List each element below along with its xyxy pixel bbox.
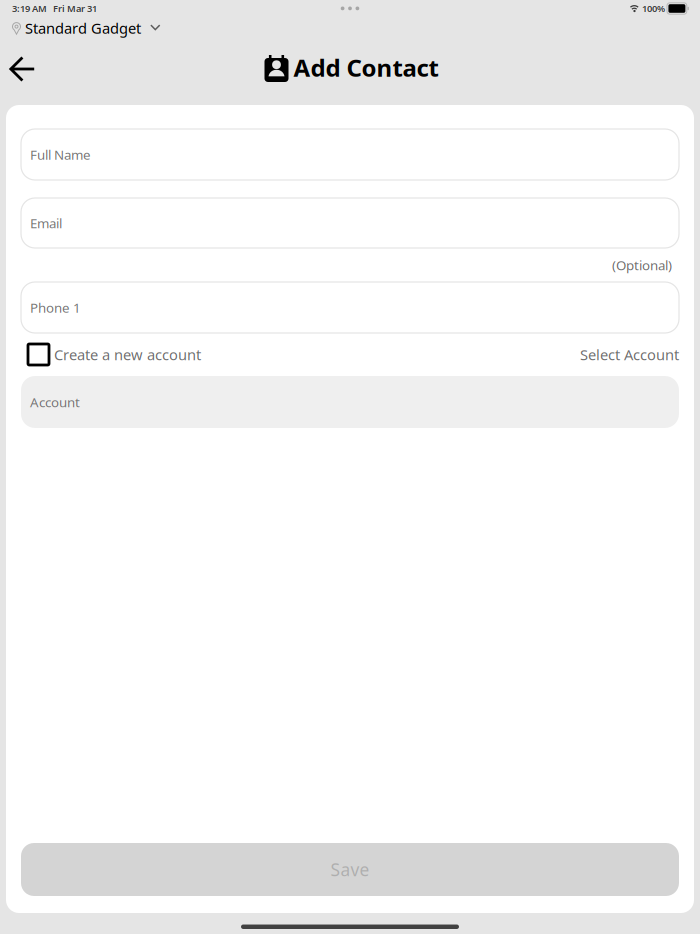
staticText: Select Account bbox=[580, 345, 679, 364]
button[interactable]: Phone 1 bbox=[21, 282, 679, 333]
staticText: 100% bbox=[640, 2, 667, 15]
staticText: Email bbox=[30, 214, 62, 232]
staticText: 3:19 AM Fri Mar 31 bbox=[12, 2, 97, 15]
button[interactable]: Account bbox=[21, 376, 679, 428]
staticText: Create a new account bbox=[54, 345, 201, 364]
button[interactable]: Select Account bbox=[580, 333, 679, 376]
staticText: Add Contact bbox=[293, 52, 438, 83]
staticText: Save bbox=[330, 858, 369, 881]
staticText: Account bbox=[30, 393, 80, 411]
button[interactable]: Create a new account bbox=[21, 333, 201, 376]
button[interactable]: Standard Gadget bbox=[0, 16, 167, 44]
button[interactable]: Save bbox=[21, 843, 679, 896]
button[interactable]: Email bbox=[21, 198, 679, 248]
button[interactable]: Full Name bbox=[21, 129, 679, 180]
staticText: Full Name bbox=[30, 146, 91, 163]
staticText: Standard Gadget bbox=[25, 18, 141, 38]
staticText: Phone 1 bbox=[30, 299, 81, 316]
staticText: (Optional) bbox=[612, 256, 672, 274]
button[interactable]: Back bbox=[0, 45, 45, 93]
